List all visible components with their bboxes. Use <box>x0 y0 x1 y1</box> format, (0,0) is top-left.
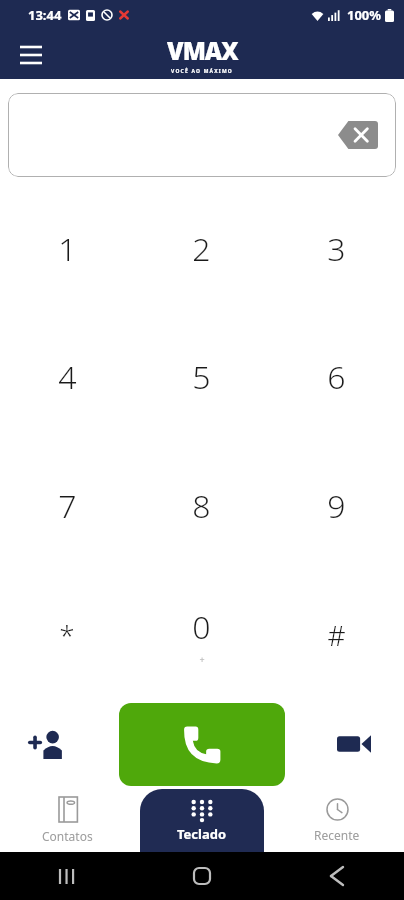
button[interactable]: Add contact <box>22 716 78 772</box>
staticText: 4 <box>58 355 77 399</box>
staticText: VOCÊ AO MÁXIMO <box>171 68 234 75</box>
staticText: 3 <box>327 227 346 271</box>
button[interactable]: Recent apps <box>0 852 134 900</box>
button[interactable]: Backspace <box>8 93 396 177</box>
staticText: Recente <box>314 827 360 843</box>
button[interactable]: Teclado <box>140 789 264 852</box>
button[interactable]: Backspace <box>338 121 378 149</box>
button[interactable]: 7 <box>0 441 134 570</box>
staticText: 6 <box>327 355 346 399</box>
staticText: 2 <box>192 227 211 271</box>
staticText: 100% <box>347 6 382 24</box>
staticText: VMAX <box>167 34 238 67</box>
button[interactable]: Menu <box>14 38 48 72</box>
button[interactable]: 1 <box>0 185 134 313</box>
button[interactable]: 0 <box>134 570 269 699</box>
button[interactable]: Recente <box>269 789 404 852</box>
staticText: 1 <box>58 227 77 271</box>
staticText: 9 <box>327 484 346 528</box>
button[interactable]: 2 <box>134 185 269 313</box>
staticText: Contatos <box>42 828 93 844</box>
staticText: # <box>327 616 346 654</box>
button[interactable]: # <box>269 570 404 699</box>
staticText: 8 <box>192 484 211 528</box>
button[interactable]: * <box>0 570 134 699</box>
button[interactable]: Call <box>119 703 285 786</box>
button[interactable]: 3 <box>269 185 404 313</box>
staticText: 0 <box>192 605 211 649</box>
staticText: + <box>199 653 205 665</box>
staticText: 7 <box>58 484 77 528</box>
button[interactable]: 4 <box>0 313 134 441</box>
button[interactable]: Back <box>269 852 404 900</box>
button[interactable]: 8 <box>134 441 269 570</box>
button[interactable]: 9 <box>269 441 404 570</box>
staticText: Teclado <box>177 825 227 843</box>
button[interactable]: 6 <box>269 313 404 441</box>
button[interactable]: 5 <box>134 313 269 441</box>
staticText: 13:44 <box>28 6 62 24</box>
staticText: 5 <box>192 355 211 399</box>
staticText: * <box>59 616 75 654</box>
button[interactable]: Home <box>134 852 269 900</box>
button[interactable]: Contatos <box>0 789 134 852</box>
button[interactable]: Video call <box>326 716 382 772</box>
